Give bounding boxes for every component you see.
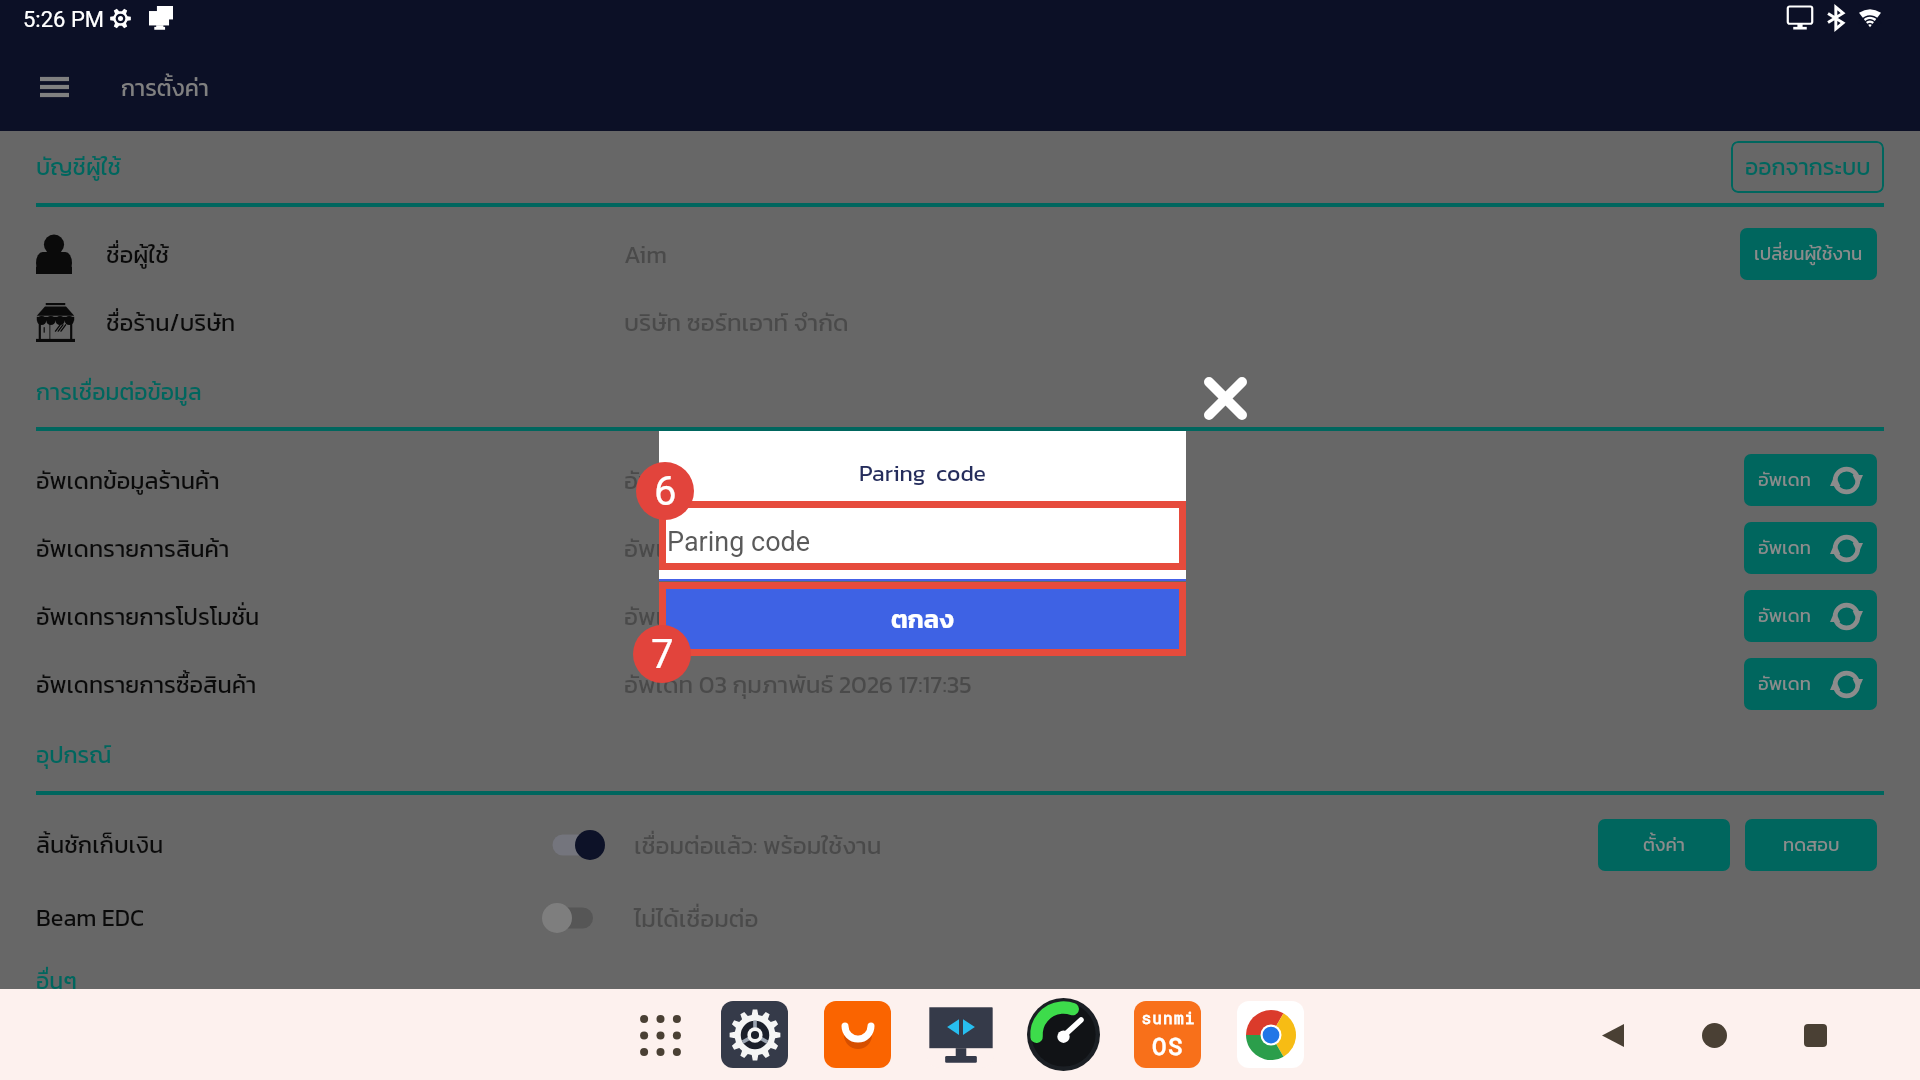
staticText: อัพเดทรายการโปรโมชั่น bbox=[36, 599, 260, 634]
staticText: อัพเดท 03 กุมภาพันธ์ 2026 17:17:35 bbox=[624, 530, 972, 566]
button[interactable]: ตกลง bbox=[666, 589, 1179, 649]
button[interactable]: All apps bbox=[626, 1001, 694, 1069]
button[interactable]: SUNMI OS bbox=[1134, 1001, 1201, 1068]
button[interactable]: Menu bbox=[25, 58, 83, 116]
staticText: Paring code bbox=[859, 456, 986, 490]
staticText: การเชื่อมต่อข้อมูล bbox=[36, 375, 202, 409]
button[interactable]: Chrome bbox=[1237, 1001, 1304, 1068]
staticText: อัพเดท 03 กุมภาพันธ์ 2026 17:17:35 bbox=[624, 462, 972, 498]
button[interactable]: Settings bbox=[721, 1001, 788, 1068]
staticText: ชื่อผู้ใช้ bbox=[106, 237, 169, 272]
staticText: อัพเดทข้อมูลร้านค้า bbox=[36, 463, 220, 498]
staticText: อัพเดทรายการสินค้า bbox=[36, 531, 230, 566]
staticText: อัพเดท bbox=[1758, 602, 1811, 630]
staticText: เปลี่ยนผู้ใช้งาน bbox=[1754, 240, 1863, 268]
staticText: อุปกรณ์ bbox=[36, 738, 112, 772]
button[interactable]: เปลี่ยนผู้ใช้งาน bbox=[1740, 228, 1877, 280]
staticText: บริษัท ซอร์ทเอาท์ จำกัด bbox=[624, 304, 849, 340]
staticText: OS bbox=[1152, 1030, 1184, 1062]
staticText: ไม่ได้เชื่อมต่อ bbox=[634, 900, 759, 936]
button[interactable]: อัพเดท bbox=[1744, 590, 1877, 642]
button[interactable]: อัพเดท bbox=[1744, 454, 1877, 506]
staticText: 6 bbox=[654, 468, 677, 515]
staticText: อัพเดท 03 กุมภาพันธ์ 2026 17:17:35 bbox=[624, 666, 972, 702]
staticText: 7 bbox=[651, 631, 674, 678]
staticText: อัพเดท bbox=[1758, 670, 1811, 698]
staticText: เชื่อมต่อแล้ว: พร้อมใช้งาน bbox=[634, 827, 882, 863]
button[interactable]: อัพเดท bbox=[1744, 658, 1877, 710]
button[interactable]: Back bbox=[1585, 1007, 1641, 1063]
staticText: อื่นๆ bbox=[36, 964, 77, 989]
staticText: Beam EDC bbox=[36, 900, 145, 935]
staticText: sunmi bbox=[1141, 1007, 1196, 1028]
button[interactable]: อัพเดท bbox=[1744, 522, 1877, 574]
staticText: ทดสอบ bbox=[1783, 831, 1840, 859]
staticText: ชื่อร้าน/บริษัท bbox=[106, 305, 236, 340]
staticText: อัพเดท bbox=[1758, 466, 1811, 494]
staticText: ตั้งค่า bbox=[1643, 831, 1685, 859]
button[interactable]: Close bbox=[1199, 372, 1251, 424]
button[interactable]: Recents bbox=[1787, 1007, 1843, 1063]
staticText: 5:26 PM bbox=[23, 7, 104, 33]
staticText: บัญชีผู้ใช้ bbox=[36, 150, 121, 184]
staticText: ลิ้นชักเก็บเงิน bbox=[36, 827, 164, 862]
staticText: อัพเดท bbox=[1758, 534, 1811, 562]
staticText: อัพเดท 03 กุมภาพันธ์ 2026 17:17:35 bbox=[624, 598, 972, 634]
staticText: อัพเดทรายการซื้อสินค้า bbox=[36, 667, 257, 702]
button[interactable]: Store bbox=[824, 1001, 891, 1068]
button[interactable]: Speed test bbox=[1027, 998, 1100, 1071]
button[interactable]: ออกจากระบบ bbox=[1731, 141, 1884, 193]
button[interactable]: Toggle bbox=[542, 829, 605, 861]
staticText: Aim bbox=[624, 236, 667, 272]
button[interactable]: ตั้งค่า bbox=[1598, 819, 1730, 871]
staticText: ตกลง bbox=[891, 600, 954, 638]
button[interactable]: Paring code bbox=[666, 508, 1179, 563]
button[interactable]: ทดสอบ bbox=[1745, 819, 1877, 871]
staticText: ออกจากระบบ bbox=[1745, 150, 1871, 184]
staticText: การตั้งค่า bbox=[121, 71, 209, 105]
button[interactable]: Toggle bbox=[542, 902, 605, 934]
button[interactable]: Home bbox=[1686, 1007, 1742, 1063]
button[interactable]: Display bbox=[927, 1001, 994, 1068]
staticText: Paring code bbox=[667, 526, 811, 558]
